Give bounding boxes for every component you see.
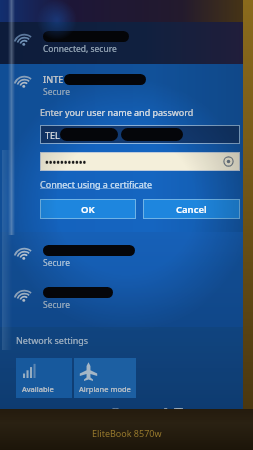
button[interactable]: TEL xyxy=(41,126,239,143)
staticText: Secure xyxy=(43,86,70,98)
staticText: Enter your user name and password xyxy=(40,106,194,118)
staticText: Available xyxy=(22,384,54,394)
button[interactable]: Network settings xyxy=(16,334,89,346)
staticText: EliteBook 8570w xyxy=(92,427,162,439)
other: Wi-Fi network xyxy=(14,33,34,53)
button[interactable]: Wi-Fi network xyxy=(0,278,253,320)
button[interactable]: Cancel xyxy=(144,200,239,218)
staticText: Connected, secure xyxy=(43,43,117,55)
other: Wi-Fi network xyxy=(14,289,34,309)
staticText: Cancel xyxy=(176,203,207,216)
button[interactable]: ••••••••••• xyxy=(41,153,239,170)
button[interactable]: Available xyxy=(16,358,72,398)
other: Wi-Fi network xyxy=(14,247,34,267)
staticText: Airplane mode xyxy=(79,384,131,394)
staticText: TEL xyxy=(45,129,60,141)
button[interactable]: OK xyxy=(41,200,135,218)
staticText: Secure xyxy=(43,257,70,269)
other: Wi-Fi network xyxy=(14,75,34,95)
staticText: INTE xyxy=(43,73,64,85)
button[interactable]: Airplane mode xyxy=(74,358,136,398)
staticText: OK xyxy=(81,203,95,216)
button[interactable]: Wi-Fi network xyxy=(0,236,253,278)
button[interactable]: Connect using a certificate xyxy=(40,178,153,190)
button[interactable]: Wi-Fi network xyxy=(0,68,253,102)
other: Show password xyxy=(223,156,234,167)
staticText: ••••••••••• xyxy=(45,155,87,169)
button[interactable]: Wi-Fi network xyxy=(0,22,253,64)
staticText: Secure xyxy=(43,299,70,311)
